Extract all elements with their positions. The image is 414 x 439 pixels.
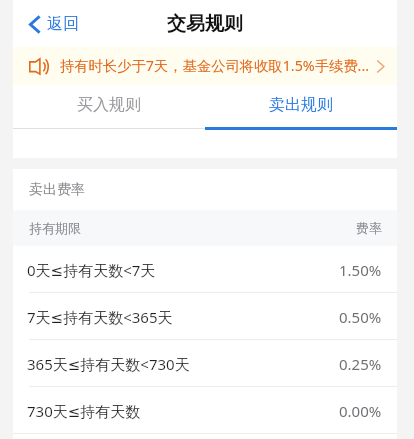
staticText: 持有期限 xyxy=(29,220,356,236)
staticText: 730天≤持有天数 xyxy=(27,401,339,421)
button[interactable]: 买入规则 xyxy=(13,85,205,130)
staticText: 1.50% xyxy=(339,260,382,280)
staticText: 7天≤持有天数<365天 xyxy=(27,307,339,327)
staticText: 0.25% xyxy=(339,354,382,374)
staticText: 365天≤持有天数<730天 xyxy=(27,354,339,374)
staticText: 0.50% xyxy=(339,307,382,327)
staticText: 持有时长少于7天，基金公司将收取1.5%手续费... xyxy=(60,56,370,76)
button[interactable]: 7天≤持有天数<365天 xyxy=(13,293,397,340)
staticText: 买入规则 xyxy=(77,95,141,115)
button[interactable]: 0天≤持有天数<7天 xyxy=(13,246,397,293)
button[interactable]: 返回 xyxy=(24,8,84,40)
staticText: 0天≤持有天数<7天 xyxy=(27,260,339,280)
button[interactable]: 730天≤持有天数 xyxy=(13,387,397,434)
staticText: 费率 xyxy=(356,220,382,236)
staticText: 返回 xyxy=(47,14,79,34)
button[interactable]: 365天≤持有天数<730天 xyxy=(13,340,397,387)
staticText: 卖出规则 xyxy=(269,95,333,115)
button[interactable]: 持有时长少于7天，基金公司将收取1.5%手续费... xyxy=(13,47,397,85)
staticText: 交易规则 xyxy=(167,12,243,36)
staticText: 卖出费率 xyxy=(29,181,85,199)
button[interactable]: 卖出规则 xyxy=(205,85,397,130)
staticText: 0.00% xyxy=(339,401,382,421)
